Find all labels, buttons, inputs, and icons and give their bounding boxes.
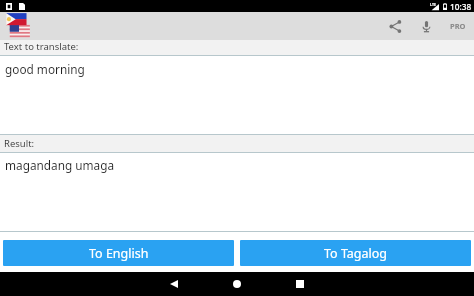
- staticText: magandang umaga: [5, 157, 115, 173]
- button[interactable]: Voice input: [413, 13, 439, 39]
- button[interactable]: Back: [162, 272, 186, 296]
- button[interactable]: Share: [382, 13, 408, 39]
- button[interactable]: PRO: [442, 12, 474, 40]
- staticText: PRO: [450, 21, 466, 31]
- staticText: Result:: [4, 137, 35, 150]
- button[interactable]: Recents: [288, 272, 312, 296]
- button[interactable]: To English: [3, 240, 234, 266]
- staticText: To English: [89, 245, 149, 262]
- staticText: 10:38: [450, 1, 472, 12]
- staticText: Text to translate:: [4, 40, 79, 53]
- staticText: To Tagalog: [324, 245, 388, 262]
- staticText: good morning: [5, 61, 85, 77]
- staticText: LTE: [430, 2, 436, 7]
- button[interactable]: Home: [225, 272, 249, 296]
- button[interactable]: To Tagalog: [240, 240, 471, 266]
